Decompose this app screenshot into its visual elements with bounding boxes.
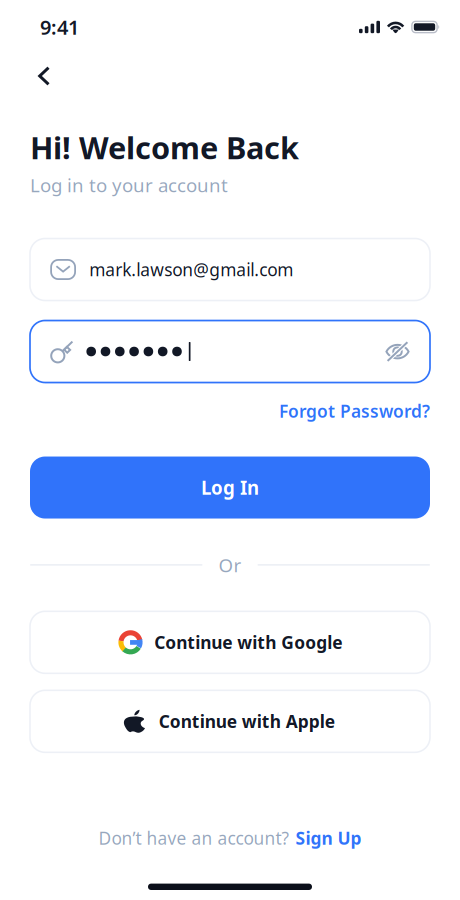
staticText: Sign Up — [295, 827, 361, 850]
button[interactable]: Don’t have an account? — [98, 827, 361, 850]
button[interactable]: Log In — [30, 456, 430, 518]
button[interactable]: Forgot Password? — [279, 399, 430, 422]
staticText: Or — [218, 552, 241, 577]
staticText: Don’t have an account? — [98, 827, 289, 850]
staticText: Log in to your account — [30, 173, 228, 197]
staticText: 9:41 — [40, 14, 79, 40]
staticText: mark.lawson@gmail.com — [89, 258, 293, 281]
button[interactable]: Back — [38, 56, 78, 96]
staticText: Forgot Password? — [279, 399, 430, 422]
button[interactable]: Continue with Google — [30, 611, 430, 673]
staticText: Hi! Welcome Back — [30, 127, 299, 168]
staticText: Log In — [201, 475, 259, 500]
button[interactable]: Continue with Apple — [30, 690, 430, 752]
staticText: Continue with Apple — [159, 710, 335, 733]
button[interactable]: Show password — [385, 340, 410, 363]
staticText: Continue with Google — [154, 631, 342, 654]
